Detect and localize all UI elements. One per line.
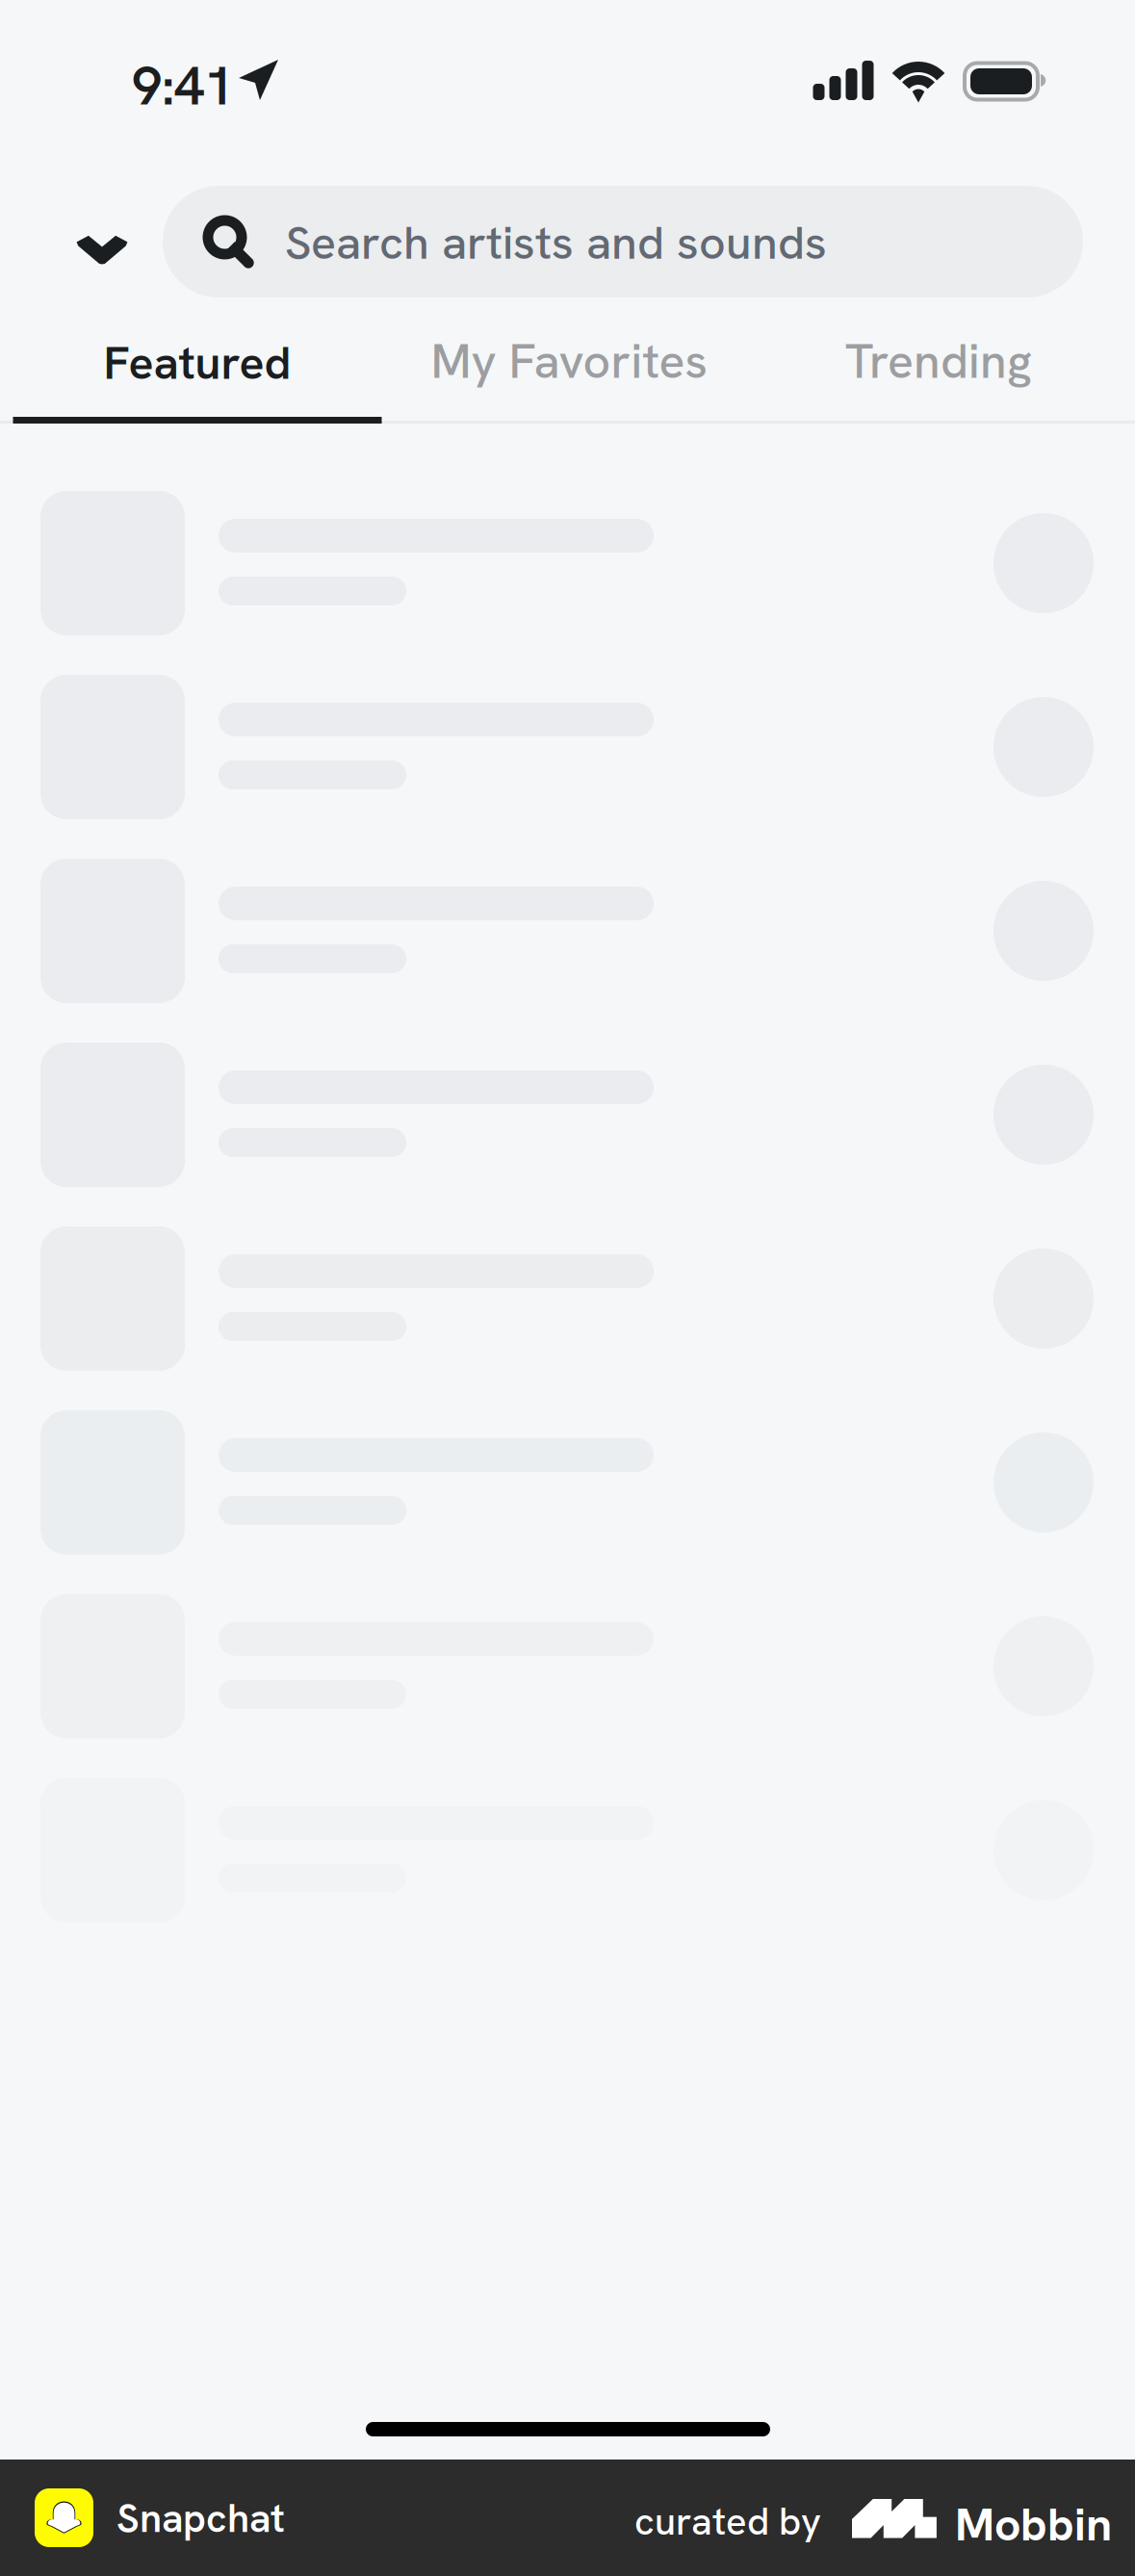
staticText: My Favorites [431,330,707,392]
staticText: Mobbin [955,2494,1112,2554]
button[interactable]: Collapse [49,196,155,302]
button[interactable]: Featured [12,327,383,424]
button[interactable]: Search artists and sounds [163,186,1083,297]
staticText: Search artists and sounds [285,212,827,273]
staticText: Snapchat [116,2492,285,2544]
staticText: 9:41 [132,51,234,121]
button[interactable]: My Favorites [383,327,755,395]
staticText: curated by [634,2496,821,2546]
staticText: Trending [845,330,1032,392]
button[interactable]: Trending [753,327,1124,395]
staticText: Featured [103,332,291,393]
